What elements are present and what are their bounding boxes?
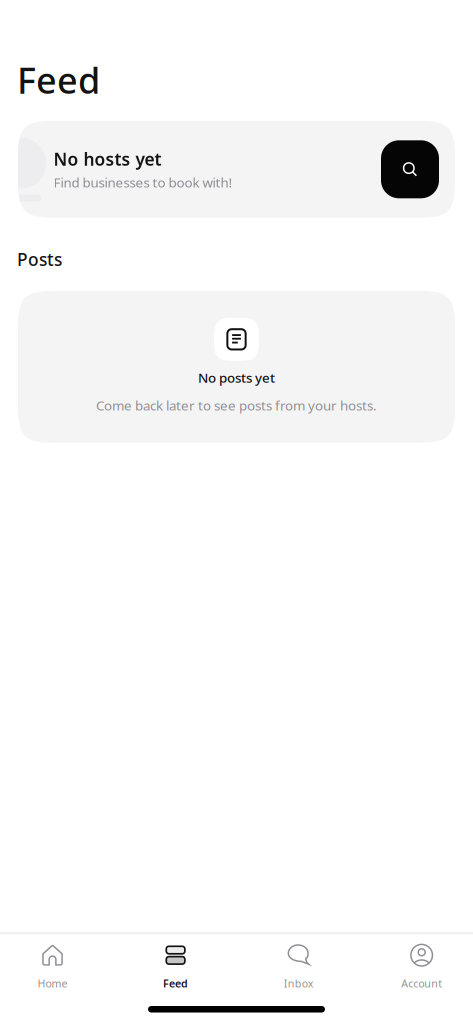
staticText: Posts <box>17 248 62 271</box>
staticText: No hosts yet <box>53 147 161 170</box>
staticText: Find businesses to book with! <box>53 173 232 191</box>
staticText: Come back later to see posts from your h… <box>96 396 377 414</box>
button[interactable]: Home <box>0 934 118 999</box>
staticText: Home <box>37 976 67 990</box>
staticText: Account <box>401 976 442 990</box>
button[interactable]: Search <box>381 140 439 198</box>
button[interactable]: Feed <box>118 934 236 999</box>
staticText: Inbox <box>284 976 314 990</box>
staticText: Feed <box>17 56 100 104</box>
button[interactable]: Inbox <box>236 934 355 999</box>
staticText: Feed <box>163 976 188 990</box>
button[interactable]: Account <box>355 934 473 999</box>
staticText: No posts yet <box>198 369 275 386</box>
